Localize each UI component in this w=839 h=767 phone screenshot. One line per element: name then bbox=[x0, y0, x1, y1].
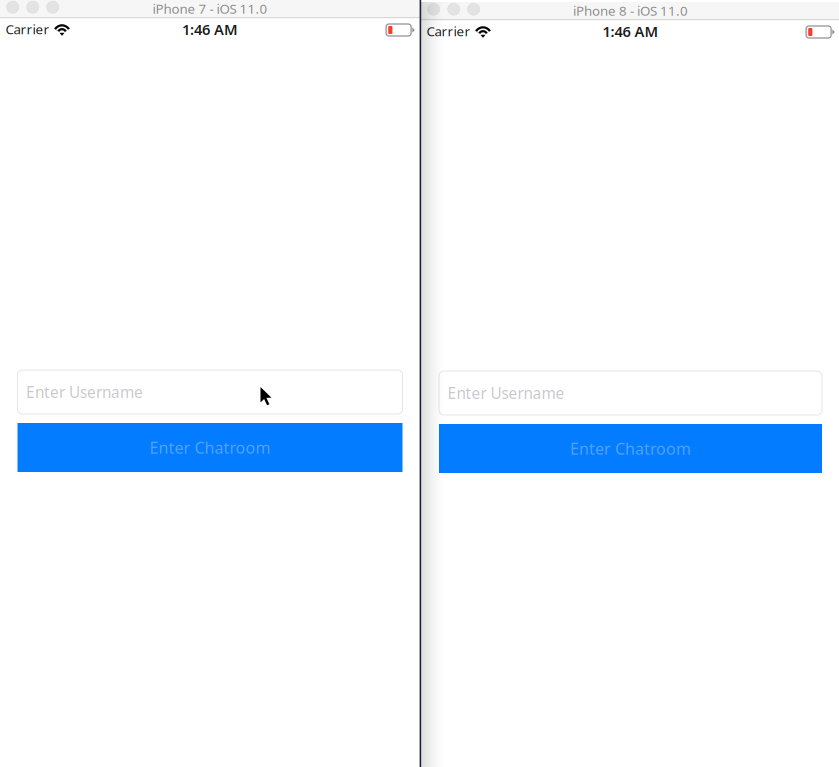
staticText: Enter Chatroom bbox=[570, 438, 691, 459]
button[interactable]: Minimise window bbox=[448, 3, 460, 15]
staticText: Enter Chatroom bbox=[149, 437, 270, 458]
staticText: Enter Username bbox=[26, 382, 143, 402]
button[interactable]: Close window bbox=[7, 1, 19, 13]
button[interactable]: Enter Username bbox=[17, 370, 402, 414]
staticText: Carrier bbox=[5, 20, 49, 38]
button[interactable]: Enter Chatroom bbox=[17, 423, 402, 472]
staticText: iPhone 7 - iOS 11.0 bbox=[152, 0, 267, 18]
button[interactable]: Enter Chatroom bbox=[439, 424, 822, 473]
staticText: 1:46 AM bbox=[602, 21, 658, 41]
staticText: 1:46 AM bbox=[182, 19, 238, 39]
staticText: Carrier bbox=[426, 22, 470, 40]
button[interactable]: Zoom window bbox=[47, 1, 59, 13]
button[interactable]: Close window bbox=[428, 3, 440, 15]
staticText: Enter Username bbox=[447, 383, 564, 403]
staticText: iPhone 8 - iOS 11.0 bbox=[573, 1, 688, 20]
button[interactable]: Minimise window bbox=[27, 1, 39, 13]
button[interactable]: Enter Username bbox=[439, 371, 822, 415]
button[interactable]: Zoom window bbox=[468, 3, 480, 15]
